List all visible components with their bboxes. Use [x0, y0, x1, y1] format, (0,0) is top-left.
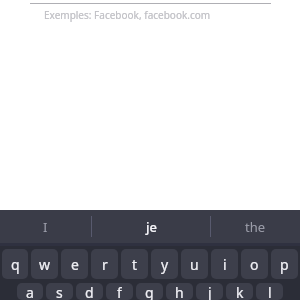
staticText: s: [56, 283, 63, 300]
button[interactable]: y: [151, 249, 178, 279]
staticText: o: [250, 255, 259, 274]
staticText: a: [26, 283, 34, 300]
button[interactable]: s: [46, 283, 73, 300]
staticText: Exemples: Facebook, facebook.com: [44, 8, 211, 22]
staticText: u: [190, 255, 199, 274]
button[interactable]: h: [166, 283, 193, 300]
button[interactable]: o: [241, 249, 268, 279]
button[interactable]: i: [211, 249, 238, 279]
staticText: I: [43, 218, 48, 236]
button[interactable]: r: [91, 249, 118, 279]
button[interactable]: a: [17, 283, 43, 300]
button[interactable]: I: [0, 210, 91, 243]
button[interactable]: d: [76, 283, 103, 300]
staticText: the: [245, 218, 266, 236]
staticText: f: [117, 283, 122, 300]
staticText: g: [145, 283, 154, 300]
button[interactable]: u: [181, 249, 208, 279]
button[interactable]: the: [211, 210, 300, 243]
button[interactable]: k: [226, 283, 253, 300]
staticText: p: [280, 255, 289, 274]
button[interactable]: l: [256, 283, 283, 300]
staticText: j: [208, 283, 212, 300]
staticText: w: [39, 255, 51, 274]
staticText: t: [132, 255, 138, 274]
staticText: i: [223, 255, 227, 274]
button[interactable]: j: [196, 283, 223, 300]
button[interactable]: t: [121, 249, 148, 279]
staticText: y: [161, 255, 169, 274]
staticText: r: [102, 255, 108, 274]
staticText: e: [71, 255, 79, 274]
button[interactable]: g: [136, 283, 163, 300]
staticText: h: [175, 283, 184, 300]
staticText: l: [268, 283, 272, 300]
button[interactable]: je: [92, 210, 210, 243]
staticText: k: [236, 283, 244, 300]
button[interactable]: e: [61, 249, 88, 279]
button[interactable]: f: [106, 283, 133, 300]
staticText: d: [85, 283, 94, 300]
staticText: je: [146, 218, 157, 236]
button[interactable]: p: [271, 249, 298, 279]
staticText: q: [11, 255, 20, 274]
button[interactable]: q: [2, 249, 28, 279]
button[interactable]: w: [31, 249, 58, 279]
